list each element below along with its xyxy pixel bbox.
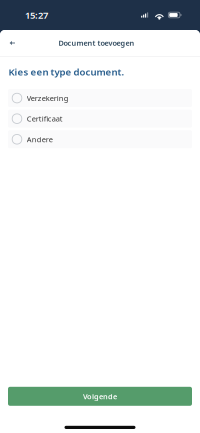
staticText: Andere bbox=[27, 134, 53, 144]
staticText: Certificaat bbox=[27, 114, 63, 124]
button[interactable]: Verzekering bbox=[8, 89, 192, 107]
button[interactable]: Volgende bbox=[8, 387, 192, 406]
staticText: Kies een type document. bbox=[8, 65, 124, 78]
staticText: 15:27 bbox=[25, 9, 48, 21]
button[interactable]: Back bbox=[0, 33, 22, 53]
button[interactable]: Andere bbox=[8, 130, 192, 148]
staticText: Volgende bbox=[83, 391, 117, 401]
button[interactable]: Certificaat bbox=[8, 110, 192, 128]
staticText: Document toevoegen bbox=[58, 38, 134, 48]
staticText: Verzekering bbox=[27, 93, 69, 103]
